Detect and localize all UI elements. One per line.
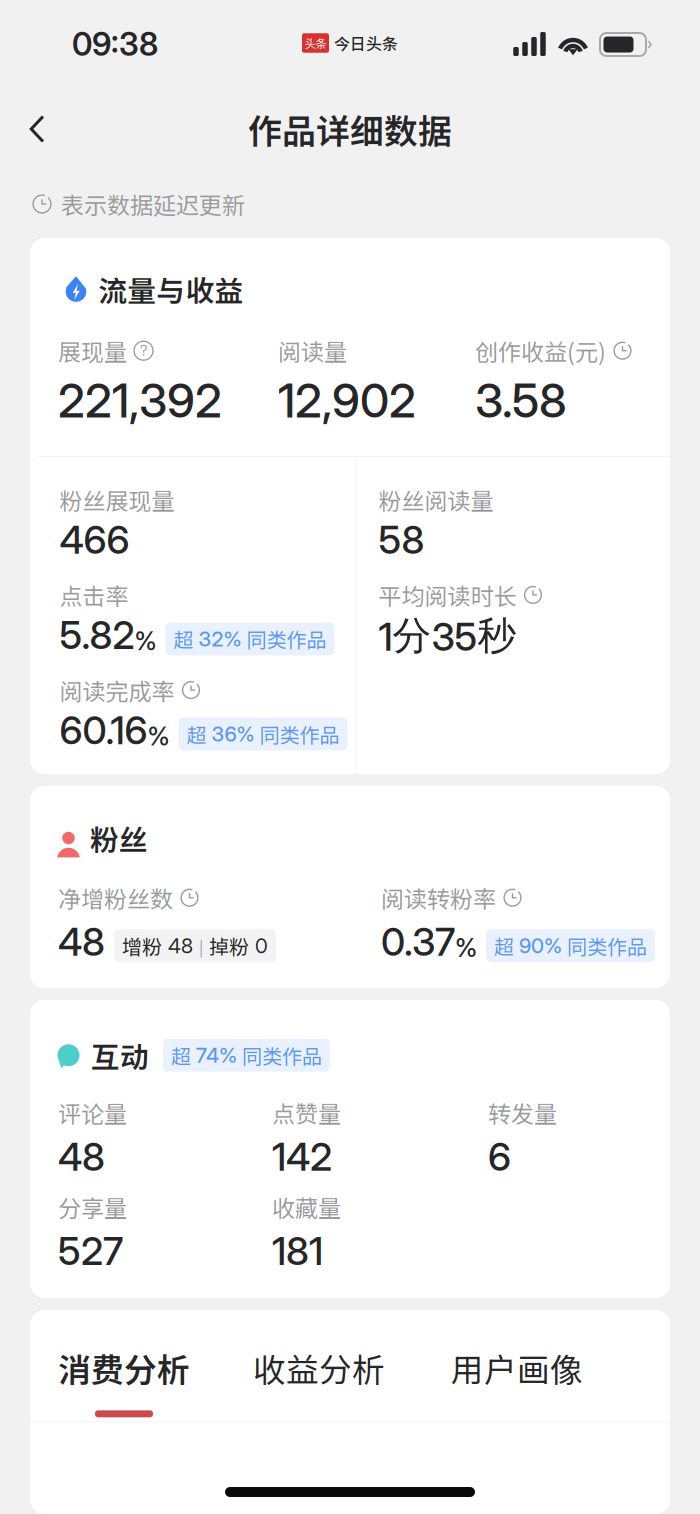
staticText: 6: [488, 1133, 511, 1180]
staticText: 分享量: [58, 1190, 127, 1224]
staticText: 527: [58, 1228, 123, 1274]
staticText: 同类作品: [246, 624, 326, 653]
staticText: 同类作品: [567, 931, 647, 960]
staticText: 90%: [519, 933, 562, 958]
staticText: 点击率: [59, 578, 128, 612]
button[interactable]: 用户画像: [451, 1310, 587, 1417]
staticText: 展现量: [58, 334, 127, 367]
staticText: 转发量: [488, 1096, 557, 1129]
staticText: 同类作品: [242, 1041, 322, 1070]
staticText: 收益分析: [253, 1344, 385, 1391]
staticText: 用户画像: [451, 1344, 583, 1391]
staticText: %: [134, 626, 156, 656]
staticText: 32%: [198, 626, 241, 651]
button[interactable]: 消费分析: [30, 1310, 253, 1417]
staticText: 头条: [304, 35, 326, 51]
staticText: ?: [140, 342, 147, 359]
staticText: 12,902: [278, 372, 416, 429]
staticText: 流量与收益: [98, 268, 243, 310]
staticText: 48: [58, 1133, 105, 1180]
staticText: 点赞量: [272, 1096, 341, 1129]
staticText: 收藏量: [272, 1190, 341, 1224]
staticText: 粉丝阅读量: [378, 483, 493, 516]
staticText: 0: [255, 933, 268, 958]
staticText: 阅读完成率: [59, 673, 174, 707]
button[interactable]: 收益分析: [253, 1310, 451, 1417]
staticText: 阅读量: [278, 334, 347, 367]
staticText: 消费分析: [58, 1344, 190, 1391]
staticText: 评论量: [58, 1096, 127, 1129]
staticText: 互动: [91, 1034, 149, 1076]
staticText: 0.37: [381, 918, 455, 965]
staticText: 58: [378, 516, 424, 563]
staticText: 增粉: [122, 931, 162, 960]
staticText: 3.58: [475, 372, 567, 429]
staticText: 超: [186, 720, 206, 749]
staticText: %: [147, 721, 169, 752]
staticText: 5.82: [59, 612, 134, 658]
staticText: 142: [272, 1133, 332, 1180]
staticText: 作品详细数据: [248, 104, 452, 153]
staticText: 掉粉: [209, 931, 249, 960]
staticText: 48: [58, 918, 105, 965]
staticText: 粉丝: [90, 817, 148, 859]
staticText: 平均阅读时长: [378, 578, 516, 612]
staticText: 09:38: [72, 25, 158, 63]
staticText: 48: [168, 933, 193, 958]
staticText: 36%: [211, 722, 254, 747]
staticText: 表示数据延迟更新: [61, 187, 245, 221]
staticText: 181: [272, 1228, 323, 1274]
staticText: |: [199, 934, 203, 957]
staticText: 466: [59, 516, 129, 563]
staticText: 超: [173, 624, 193, 653]
staticText: 今日头条: [334, 31, 398, 55]
staticText: 阅读转粉率: [381, 881, 496, 914]
staticText: 同类作品: [259, 720, 339, 749]
staticText: 粉丝展现量: [59, 483, 174, 516]
staticText: %: [455, 932, 477, 963]
staticText: 1分35秒: [378, 612, 516, 660]
staticText: 60.16: [59, 707, 147, 754]
staticText: 221,392: [58, 372, 222, 429]
staticText: 超: [171, 1041, 191, 1070]
staticText: 净增粉丝数: [58, 881, 173, 914]
staticText: 74%: [196, 1043, 237, 1068]
staticText: 创作收益(元): [475, 334, 606, 367]
staticText: 超: [494, 931, 514, 960]
button[interactable]: Back: [0, 98, 70, 159]
